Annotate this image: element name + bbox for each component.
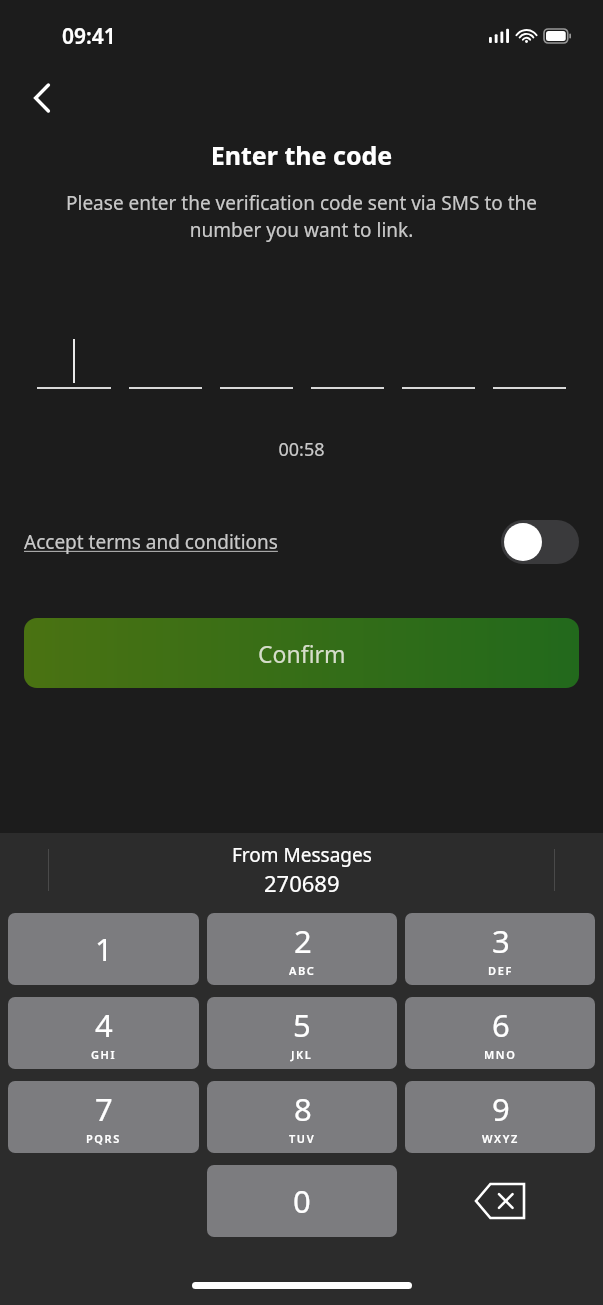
staticText: 2 [294,920,312,962]
staticText: Please enter the verification code sent … [30,190,573,243]
button[interactable]: 4 [8,997,199,1069]
button[interactable]: From Messages [0,842,603,898]
button[interactable]: 6 [405,997,595,1069]
staticText: 6 [492,1004,510,1046]
button[interactable] [493,339,566,389]
button[interactable]: 3 [405,913,595,985]
button[interactable] [311,339,384,389]
staticText: JKL [291,1047,313,1062]
staticText: TUV [289,1131,316,1146]
button[interactable]: 9 [405,1081,595,1153]
staticText: Enter the code [0,138,603,172]
staticText: From Messages [232,842,372,868]
staticText: 8 [294,1088,312,1130]
staticText: 3 [492,920,510,962]
button[interactable]: Accept terms and conditions [24,529,278,555]
staticText: 1 [95,928,113,970]
staticText: 00:58 [0,437,603,462]
staticText: DEF [488,963,513,978]
staticText: 270689 [264,868,340,898]
staticText: 7 [95,1088,113,1130]
staticText: 9 [492,1088,510,1130]
button[interactable] [37,339,111,389]
button[interactable]: 7 [8,1081,199,1153]
staticText: ABC [289,963,316,978]
button[interactable]: 5 [207,997,397,1069]
button[interactable]: 2 [207,913,397,985]
button[interactable]: Backspace [405,1165,595,1237]
button[interactable]: Accept terms toggle [501,520,579,564]
button[interactable]: 8 [207,1081,397,1153]
staticText: 09:41 [62,22,116,51]
staticText: PQRS [86,1131,121,1146]
staticText: GHI [91,1047,117,1062]
staticText: 5 [293,1004,311,1046]
button[interactable] [402,339,475,389]
button[interactable] [129,339,202,389]
staticText: Accept terms and conditions [24,529,278,555]
button[interactable]: Confirm [24,618,579,688]
button[interactable] [220,339,293,389]
staticText: 0 [293,1180,311,1222]
button[interactable]: 0 [207,1165,397,1237]
button[interactable]: Back [16,72,68,124]
staticText: MNO [484,1047,517,1062]
staticText: 4 [95,1004,113,1046]
staticText: WXYZ [482,1131,519,1146]
staticText: Confirm [258,638,346,669]
button[interactable]: 1 [8,913,199,985]
